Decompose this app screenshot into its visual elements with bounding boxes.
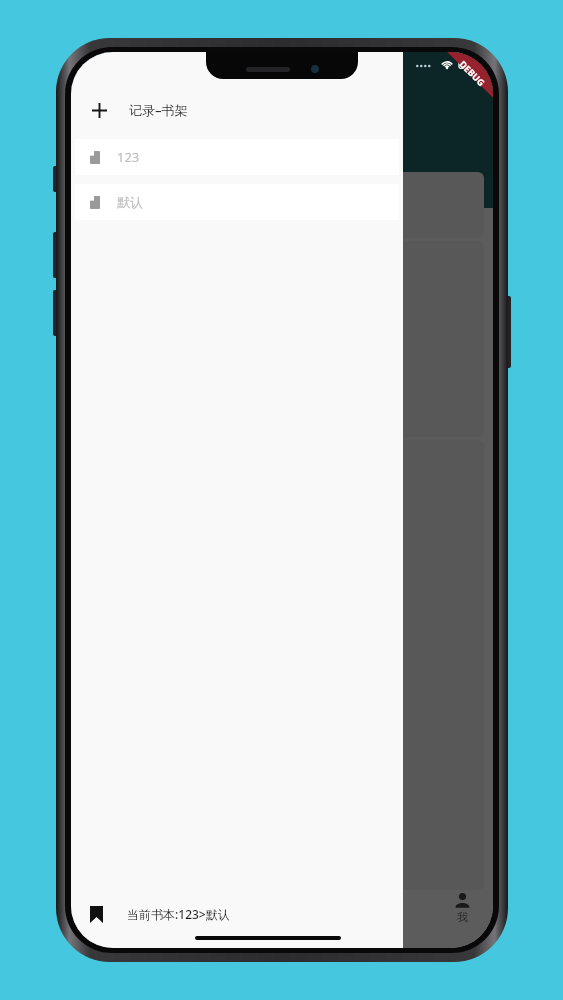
staticText: 当前书本:123>默认 [127, 906, 230, 922]
staticText: DEBUG [457, 58, 488, 88]
button[interactable]: 123 [75, 139, 399, 175]
staticText: 123 [117, 148, 140, 166]
button[interactable]: 当前书本:123>默认 [71, 892, 403, 936]
button[interactable]: Add bookshelf [80, 91, 118, 129]
staticText: 默认 [117, 194, 143, 210]
button[interactable]: 我 [446, 888, 479, 928]
button[interactable]: 默认 [75, 184, 399, 220]
staticText: 我 [457, 910, 468, 924]
staticText: 记录–书架 [129, 101, 188, 119]
